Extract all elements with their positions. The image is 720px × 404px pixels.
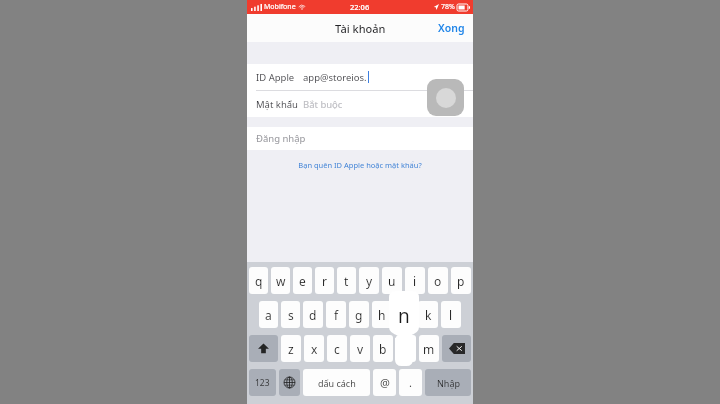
button[interactable]: v <box>350 335 370 362</box>
button[interactable]: p <box>451 267 471 294</box>
staticText: y <box>366 273 373 289</box>
staticText: o <box>434 273 442 289</box>
staticText: 22:06 <box>350 2 370 12</box>
staticText: k <box>425 307 432 323</box>
button[interactable]: Bạn quên ID Apple hoặc mật khẩu? <box>247 158 473 172</box>
button[interactable]: Đăng nhập <box>247 127 473 150</box>
button[interactable]: u <box>382 267 402 294</box>
button[interactable] <box>396 335 416 362</box>
button[interactable]: dấu cách <box>303 369 370 396</box>
staticText: c <box>334 341 340 357</box>
button[interactable]: z <box>281 335 301 362</box>
button[interactable]: s <box>281 301 300 328</box>
staticText: n <box>398 303 410 329</box>
button[interactable]: g <box>349 301 369 328</box>
staticText: Bắt buộc <box>303 98 343 111</box>
staticText: . <box>409 375 412 390</box>
staticText: d <box>309 307 317 323</box>
button[interactable]: t <box>337 267 356 294</box>
button[interactable]: Change keyboard language <box>279 369 300 396</box>
staticText: 123 <box>255 377 270 389</box>
staticText: Xong <box>438 21 465 35</box>
staticText: Mật khẩu <box>256 98 303 111</box>
button[interactable]: y <box>359 267 379 294</box>
staticText: Đăng nhập <box>256 132 306 145</box>
staticText: v <box>357 341 364 357</box>
staticText: Tài khoản <box>335 21 386 36</box>
staticText: app@storeios. <box>303 71 367 84</box>
staticText: m <box>423 341 435 357</box>
button[interactable]: i <box>405 267 425 294</box>
staticText: Nhập <box>437 377 460 389</box>
button[interactable]: d <box>303 301 323 328</box>
staticText: @ <box>380 375 390 390</box>
staticText: w <box>276 273 286 289</box>
staticText: l <box>449 307 453 323</box>
staticText: Bạn quên ID Apple hoặc mật khẩu? <box>298 160 422 170</box>
button[interactable] <box>395 301 415 328</box>
button[interactable]: q <box>249 267 268 294</box>
button[interactable]: k <box>418 301 438 328</box>
button[interactable]: 123 <box>249 369 276 396</box>
staticText: t <box>344 273 349 289</box>
staticText: a <box>265 307 272 323</box>
staticText: h <box>378 307 386 323</box>
staticText: p <box>457 273 465 289</box>
staticText: s <box>288 307 294 323</box>
button[interactable]: x <box>304 335 324 362</box>
staticText: r <box>322 273 327 289</box>
staticText: dấu cách <box>318 377 356 389</box>
staticText: ID Apple <box>256 71 303 84</box>
staticText: i <box>413 273 417 289</box>
button[interactable]: r <box>315 267 334 294</box>
button[interactable]: Backspace <box>442 335 471 362</box>
staticText: f <box>334 307 339 323</box>
staticText: u <box>388 273 396 289</box>
button[interactable]: w <box>271 267 290 294</box>
staticText: Mobifone <box>264 2 296 12</box>
button[interactable]: b <box>373 335 393 362</box>
button[interactable]: @ <box>373 369 396 396</box>
button[interactable]: h <box>372 301 392 328</box>
button[interactable]: a <box>259 301 278 328</box>
button[interactable]: Shift <box>249 335 278 362</box>
staticText: e <box>299 273 306 289</box>
staticText: x <box>311 341 318 357</box>
button[interactable]: c <box>327 335 347 362</box>
staticText: z <box>288 341 294 357</box>
button[interactable]: Mật khẩu <box>247 91 473 117</box>
button[interactable]: l <box>441 301 461 328</box>
staticText: q <box>255 273 263 289</box>
button[interactable]: f <box>326 301 346 328</box>
button[interactable]: o <box>428 267 448 294</box>
button[interactable]: ID Apple <box>247 64 473 90</box>
button[interactable]: e <box>293 267 312 294</box>
staticText: g <box>355 307 363 323</box>
staticText: b <box>379 341 387 357</box>
button[interactable]: . <box>399 369 422 396</box>
button[interactable]: Xong <box>430 16 473 40</box>
button[interactable]: m <box>419 335 439 362</box>
button[interactable]: Nhập <box>425 369 471 396</box>
staticText: 78% <box>441 2 455 12</box>
